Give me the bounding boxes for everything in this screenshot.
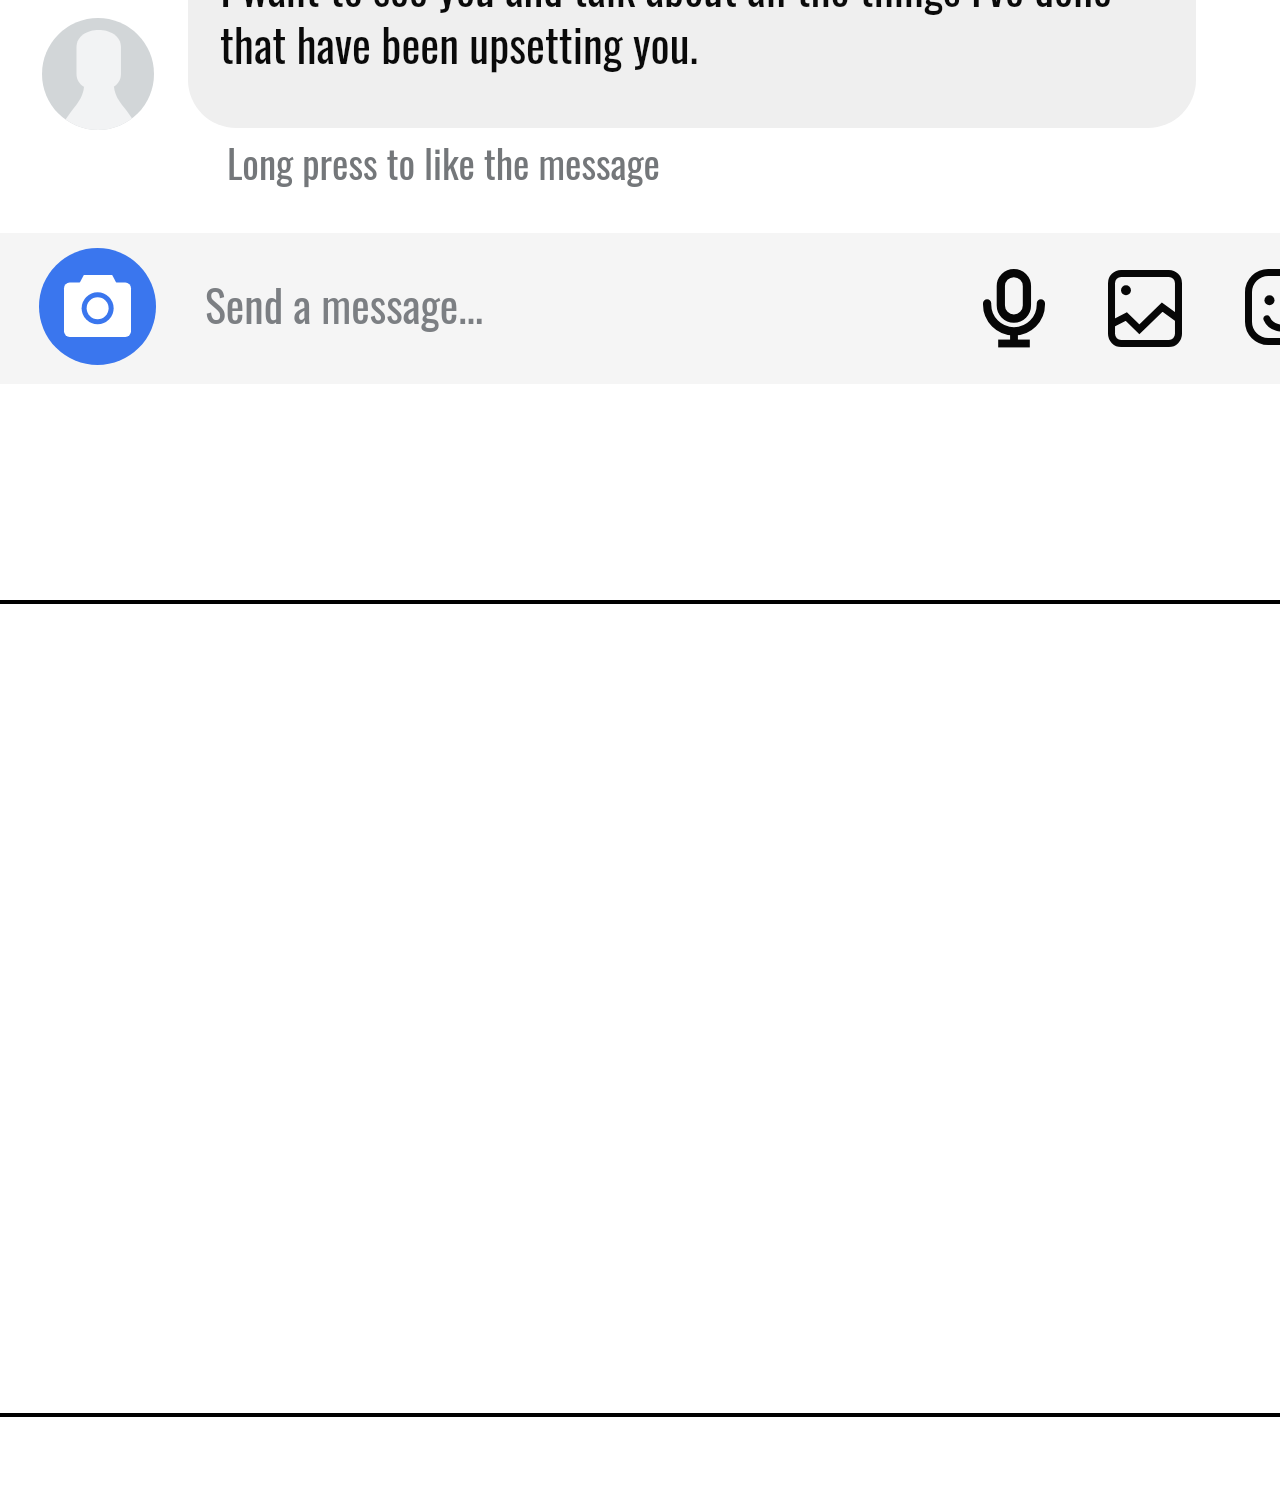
button[interactable]: I want to see you and talk about all the… [188, 0, 1196, 128]
staticText: I want to see you and talk about all the… [220, 0, 1112, 77]
staticText: Long press to like the message [227, 133, 660, 191]
staticText: Send a message... [205, 272, 484, 337]
button[interactable]: Open camera [39, 248, 156, 365]
button[interactable]: Record voice message [959, 253, 1069, 363]
button[interactable]: Profile picture [42, 18, 154, 130]
button[interactable]: Choose a photo [1090, 253, 1200, 363]
button[interactable]: Send a sticker [1228, 252, 1280, 362]
